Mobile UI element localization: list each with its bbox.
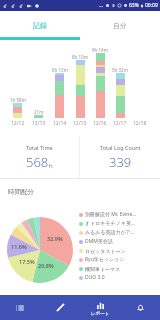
staticText: Ryu学セッション [85,256,125,263]
staticText: レポート [91,311,110,317]
staticText: 568 [26,153,49,171]
staticText: Total Time [26,144,53,151]
button[interactable]: Edit [40,295,80,320]
staticText: 12/16 [93,120,107,127]
staticText: 5h 32m [112,67,128,73]
staticText: … [99,2,103,9]
button[interactable]: レポート [80,295,120,320]
staticText: 自分 [113,21,127,30]
staticText: 339 [109,153,132,171]
staticText: 別冊解説付 Mr. Evine… [85,211,137,218]
button[interactable]: Notifications [120,295,160,320]
staticText: 00:09 [145,2,158,9]
staticText: 記録 [33,21,47,30]
staticText: DUO 3.0 [85,274,105,281]
staticText: 17.5% [19,258,35,265]
button[interactable]: ロゼッタストーン [79,246,160,255]
button[interactable]: 別冊解説付 Mr. Evine… [79,210,160,219]
staticText: 12/14 [53,120,67,127]
button[interactable]: みるみる英語力がア… [79,228,160,237]
button[interactable]: Ryu学セッション [79,255,160,264]
button[interactable]: 自分 [80,11,160,39]
staticText: 機関車トーマス [85,266,121,272]
staticText: DMM英会話 [85,238,113,245]
button[interactable]: Total Time [0,136,79,178]
staticText: 11.6% [11,243,27,250]
staticText: 12/17 [113,120,127,127]
staticText: 12/13 [32,120,46,127]
button[interactable]: DMM英会話 [79,237,160,246]
staticText: 32.9% [47,235,63,242]
staticText: Total Log Count [100,144,141,151]
staticText: オドロキモチノキ英… [85,220,135,227]
staticText: みるみる英語力がア… [85,229,135,236]
button[interactable]: Total Log Count [80,136,160,178]
staticText: 21m [34,109,44,115]
staticText: 12/12 [11,120,25,127]
button[interactable]: 記録 [0,11,80,39]
button[interactable]: オドロキモチノキ英… [79,219,160,228]
staticText: 63% [129,2,139,9]
button[interactable]: 機関車トーマス [79,264,160,273]
staticText: 1h 58m [10,97,26,103]
staticText: 6h 13m [52,67,68,73]
staticText: 20.8% [38,262,54,269]
staticText: 12/15 [73,120,87,127]
staticText: ロゼッタストーン [85,248,126,254]
staticText: h [49,162,53,170]
staticText: 8h 10m [72,54,88,60]
staticText: 時間配分 [8,188,34,196]
button[interactable]: DUO 3.0 [79,273,160,282]
staticText: 12/18 [133,120,147,127]
staticText: 9h 14m [92,47,108,53]
button[interactable]: List [0,295,40,320]
